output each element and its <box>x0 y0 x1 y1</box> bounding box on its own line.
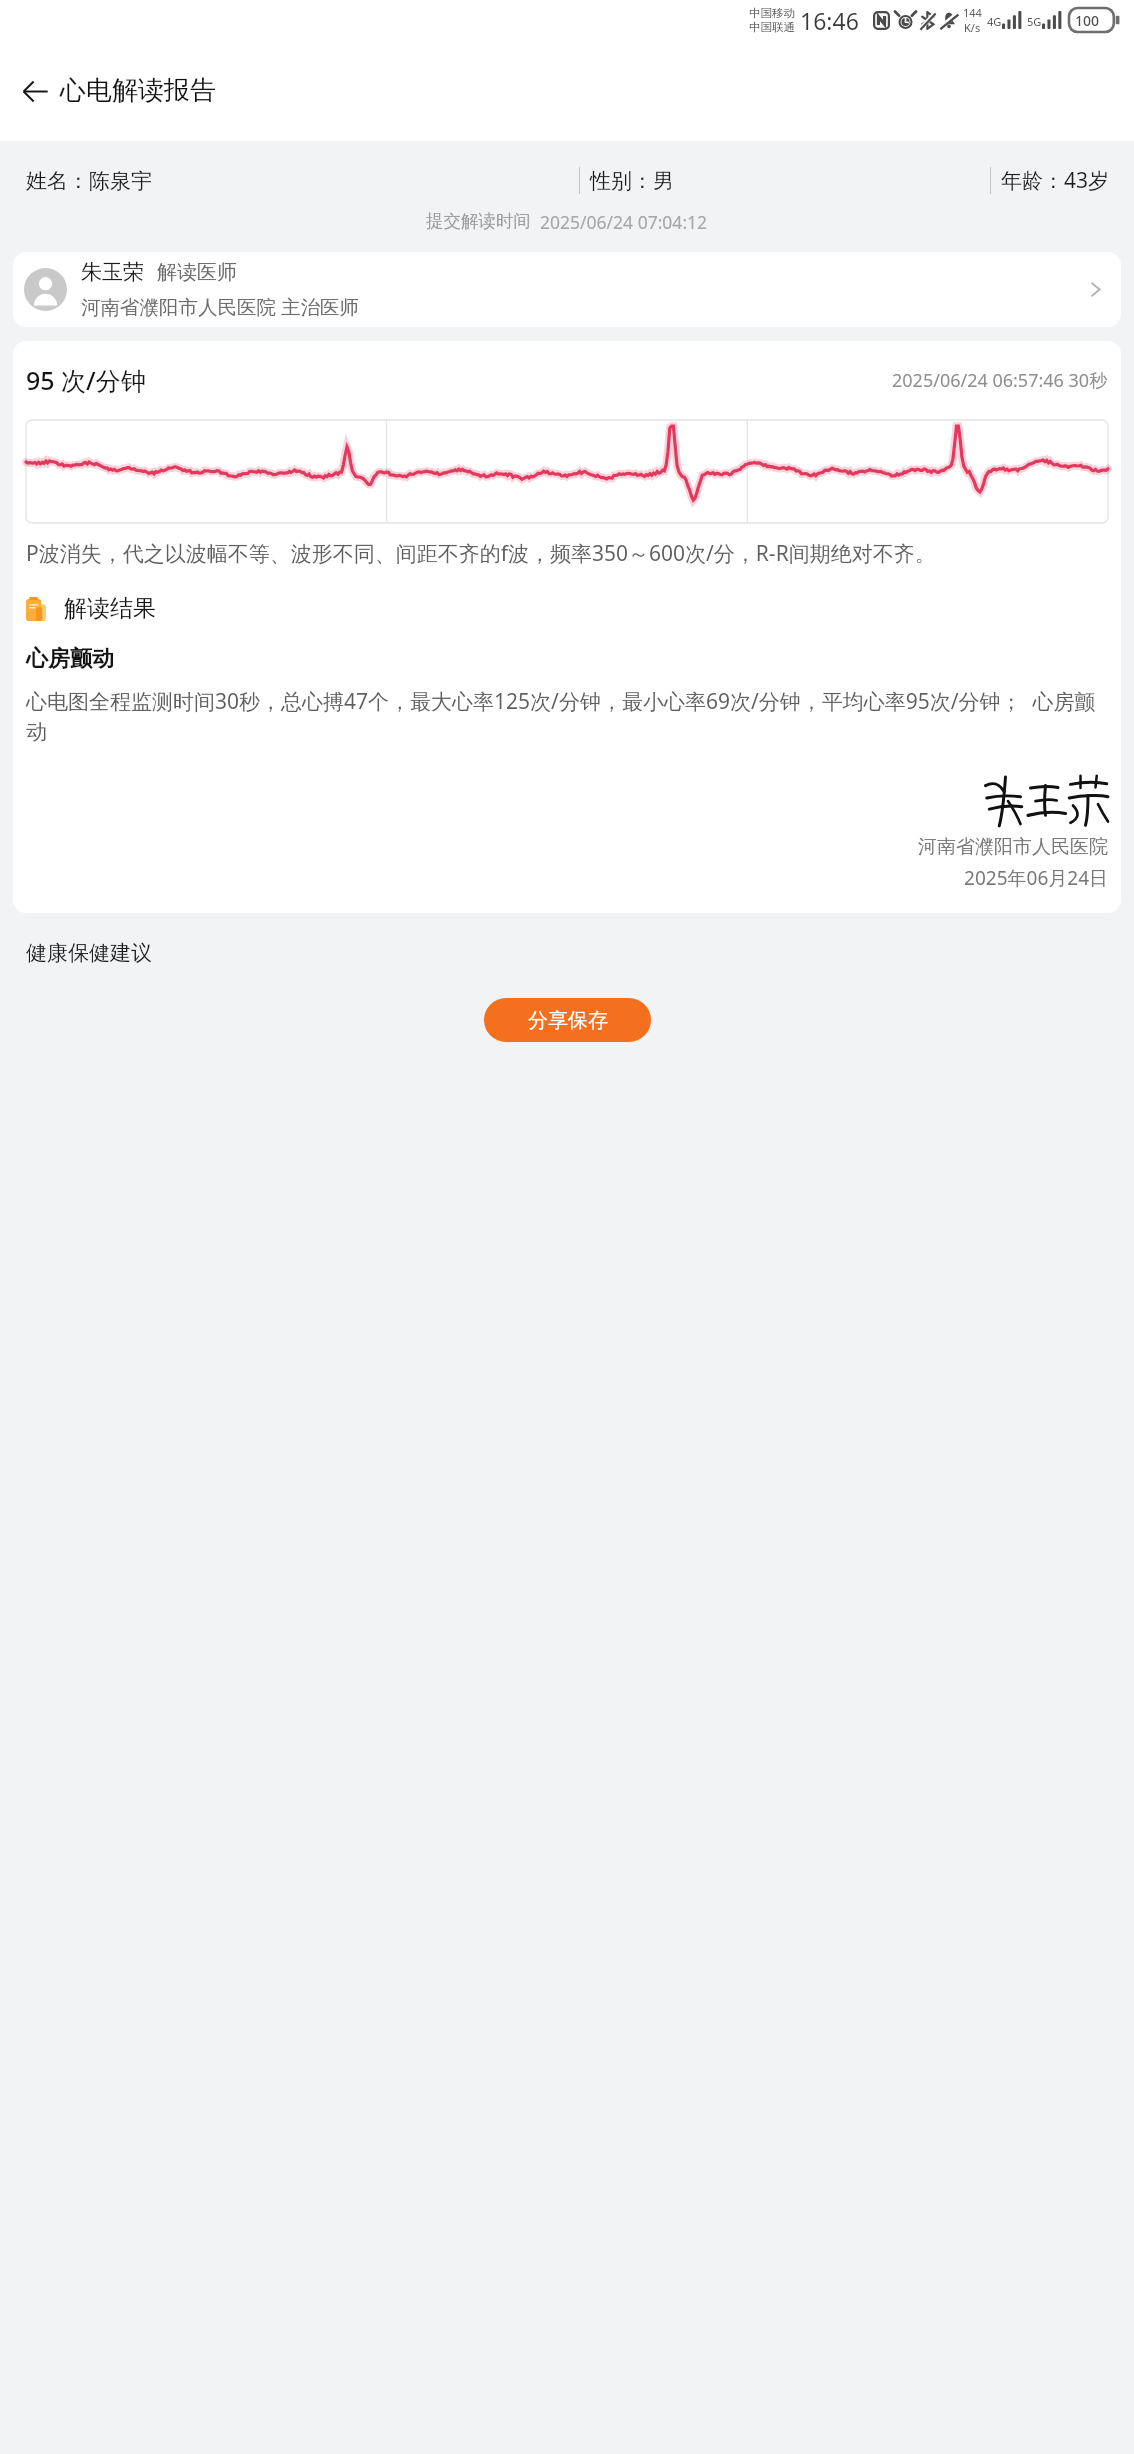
staticText: 100 <box>1075 11 1100 30</box>
staticText: 4G <box>987 14 1002 29</box>
staticText: 解读医师 <box>157 260 237 285</box>
button[interactable]: 健康保健建议 <box>26 940 152 966</box>
button[interactable]: 朱玉荣 <box>13 252 1121 327</box>
staticText: 解读结果 <box>64 594 156 623</box>
staticText: 5G <box>1027 14 1042 29</box>
staticText: 中国联通 <box>749 20 795 34</box>
staticText: 河南省濮阳市人民医院 主治医师 <box>81 293 360 320</box>
staticText: 心房颤动 <box>26 645 114 673</box>
staticText: 95 次/分钟 <box>26 363 146 397</box>
staticText: 2025/06/24 06:57:46 30秒 <box>892 368 1108 393</box>
staticText: 2025/06/24 07:04:12 <box>540 210 708 234</box>
staticText: 分享保存 <box>528 1008 608 1033</box>
staticText: 2025年06月24日 <box>26 865 1108 891</box>
staticText: 提交解读时间 <box>426 210 531 232</box>
button[interactable]: Back <box>10 66 60 116</box>
staticText: 中国移动 <box>749 6 795 20</box>
staticText: 性别：男 <box>590 168 674 194</box>
staticText: P波消失，代之以波幅不等、波形不同、间距不齐的f波，频率350～600次/分，R… <box>26 539 936 568</box>
staticText: 河南省濮阳市人民医院 <box>26 835 1108 859</box>
staticText: 144 <box>963 5 982 20</box>
staticText: 16:46 <box>800 5 859 36</box>
button[interactable]: 分享保存 <box>484 998 651 1042</box>
staticText: 朱玉荣 <box>81 259 144 285</box>
staticText: 年龄：43岁 <box>1001 166 1110 195</box>
staticText: 心电图全程监测时间30秒，总心搏47个，最大心率125次/分钟，最小心率69次/… <box>26 687 1108 745</box>
staticText: 姓名：陈泉宇 <box>26 168 152 194</box>
staticText: 心电解读报告 <box>60 74 216 107</box>
staticText: K/s <box>964 20 981 35</box>
